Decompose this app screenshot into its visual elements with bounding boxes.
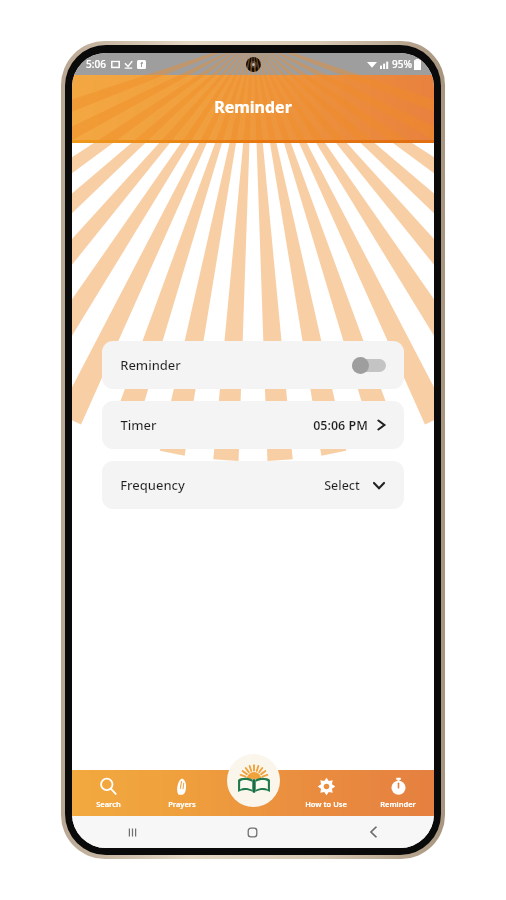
staticText: Prayers — [168, 799, 196, 809]
staticText: Frequency — [120, 476, 185, 494]
button[interactable]: Timer — [102, 401, 404, 449]
button[interactable]: Home — [227, 754, 280, 807]
button[interactable]: Search — [72, 773, 145, 813]
staticText: Search — [96, 799, 121, 809]
staticText: 5:06 — [86, 57, 106, 71]
button[interactable]: Back — [313, 825, 434, 839]
staticText: 95% — [392, 57, 412, 71]
button[interactable]: Reminder — [362, 773, 434, 813]
staticText: Reminder — [120, 356, 181, 374]
button[interactable]: Reminder — [102, 341, 404, 389]
staticText: Reminder — [380, 799, 416, 809]
button[interactable]: Frequency — [102, 461, 404, 509]
staticText: Select — [324, 477, 360, 494]
staticText: f — [140, 60, 143, 69]
staticText: Reminder — [214, 96, 292, 118]
other: Open frequency dropdown — [372, 481, 386, 490]
button[interactable]: How to Use — [290, 773, 362, 813]
button[interactable]: Recent apps — [72, 826, 192, 839]
button[interactable]: Prayers — [145, 773, 218, 813]
staticText: Timer — [120, 416, 157, 434]
staticText: How to Use — [305, 799, 347, 809]
staticText: 05:06 PM — [313, 417, 368, 434]
other: Open timer picker — [377, 418, 386, 432]
button[interactable]: Home — [192, 826, 313, 839]
button[interactable]: Reminder toggle — [352, 357, 386, 374]
